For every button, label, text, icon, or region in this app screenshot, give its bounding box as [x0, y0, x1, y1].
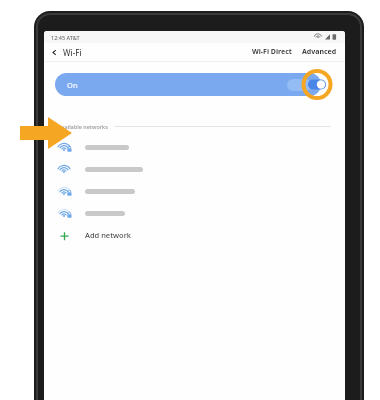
staticText: Wi-Fi Direct — [252, 47, 292, 57]
button[interactable]: On — [55, 73, 321, 96]
staticText: Wi-Fi — [63, 47, 82, 58]
staticText: Available networks — [58, 123, 108, 130]
button[interactable] — [44, 202, 345, 224]
button[interactable]: Back — [49, 45, 84, 60]
button[interactable]: Advanced — [299, 45, 340, 59]
button[interactable]: Add network — [44, 224, 345, 246]
button[interactable]: Wi-Fi Direct — [249, 45, 295, 59]
staticText: Add network — [85, 230, 132, 240]
staticText: On — [67, 80, 78, 90]
staticText: 12:45 AT&T — [51, 34, 80, 41]
staticText: Advanced — [302, 47, 337, 57]
button[interactable] — [44, 180, 345, 202]
button[interactable] — [44, 158, 345, 180]
button[interactable] — [44, 136, 345, 158]
